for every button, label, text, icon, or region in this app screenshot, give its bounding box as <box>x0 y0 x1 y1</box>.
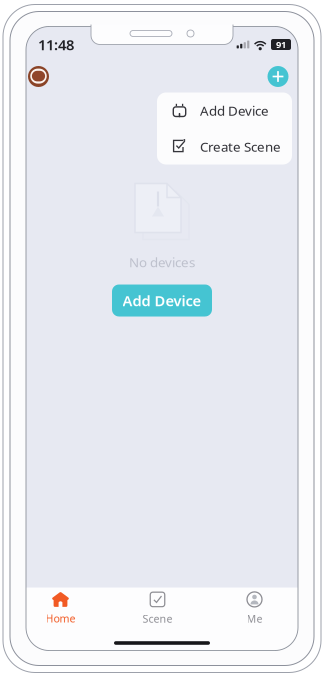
button[interactable]: Home <box>39 587 82 629</box>
staticText: Create Scene <box>200 138 281 155</box>
staticText: Me <box>246 611 262 626</box>
button[interactable]: Create Scene <box>157 128 292 164</box>
button[interactable]: Add Device <box>112 284 212 316</box>
staticText: Add Device <box>122 290 201 310</box>
staticText: No devices <box>129 253 195 271</box>
button[interactable]: Add Device <box>157 92 292 128</box>
button[interactable]: Scene <box>136 587 179 629</box>
staticText: Add Device <box>200 102 269 119</box>
staticText: Home <box>45 611 75 625</box>
staticText: 91 <box>276 38 286 51</box>
staticText: 11:48 <box>38 34 74 54</box>
button[interactable]: Add <box>266 64 290 88</box>
button[interactable]: Me <box>233 587 276 629</box>
staticText: Scene <box>142 611 172 626</box>
